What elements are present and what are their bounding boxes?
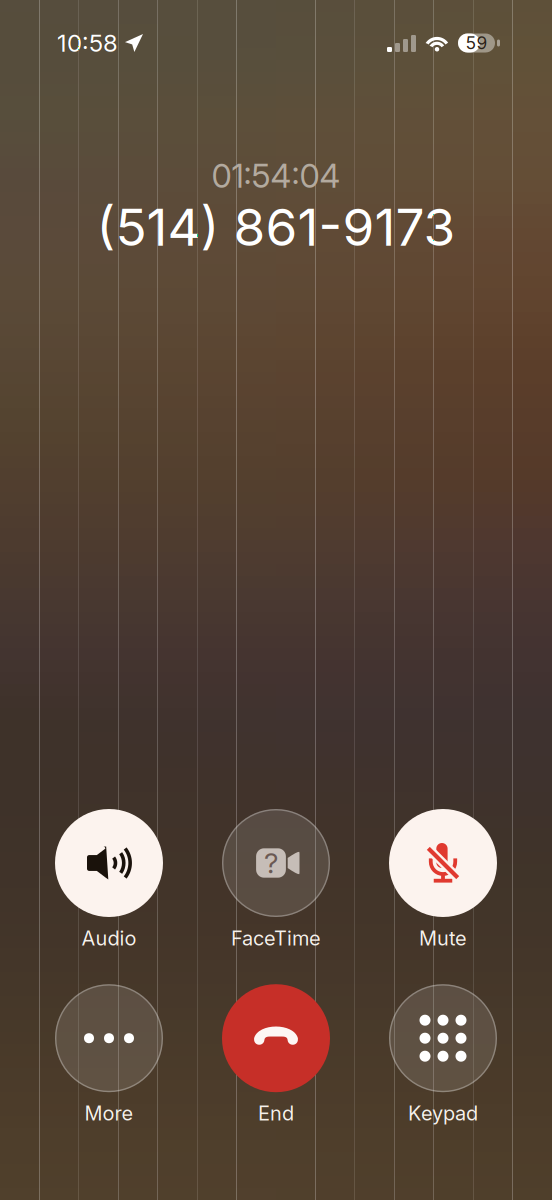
button[interactable]: More: [34, 984, 184, 1125]
staticText: More: [84, 1101, 133, 1125]
staticText: ?: [264, 846, 278, 880]
button[interactable]: Keypad: [368, 984, 518, 1125]
button[interactable]: Mute: [368, 809, 518, 950]
staticText: 01:54:04: [211, 156, 340, 195]
button[interactable]: End: [201, 984, 351, 1125]
staticText: Mute: [419, 926, 467, 950]
staticText: Audio: [81, 926, 136, 950]
button[interactable]: Audio: [34, 809, 184, 950]
staticText: FaceTime: [231, 926, 321, 950]
staticText: End: [258, 1101, 294, 1125]
button[interactable]: ?: [201, 809, 351, 950]
staticText: 59: [465, 32, 487, 53]
staticText: Keypad: [408, 1101, 478, 1125]
staticText: (514) 861-9173: [96, 196, 455, 258]
staticText: 10:58: [57, 28, 118, 57]
